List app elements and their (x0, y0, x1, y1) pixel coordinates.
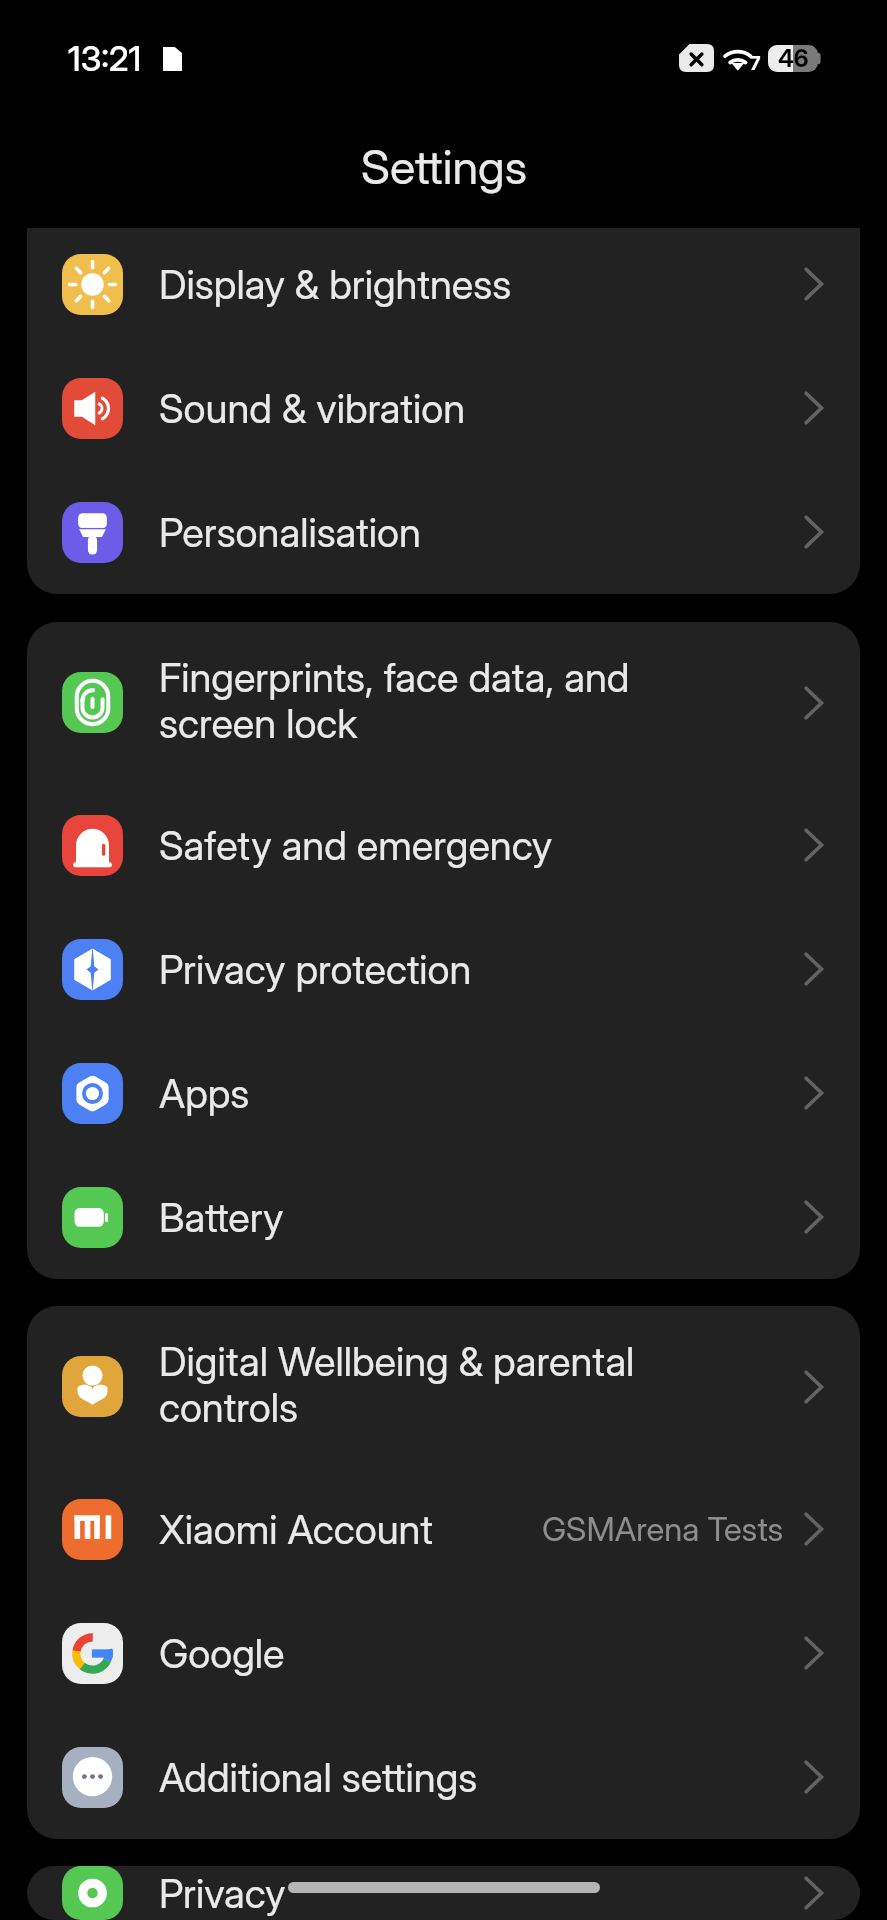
button[interactable]: Fingerprints, face data, and screen lock (27, 622, 860, 783)
staticText: Personalisation (159, 508, 804, 556)
button[interactable]: Sound & vibration (27, 346, 860, 470)
staticText: 46 (778, 44, 809, 71)
button[interactable]: Battery (27, 1155, 860, 1279)
staticText: Safety and emergency (159, 821, 804, 869)
button[interactable]: Display & brightness (27, 228, 860, 346)
staticText: Privacy protection (159, 945, 804, 993)
staticText: Battery (159, 1193, 804, 1241)
other: No SIM card (679, 44, 714, 72)
staticText: Additional settings (159, 1753, 804, 1801)
button[interactable]: Apps (27, 1031, 860, 1155)
button[interactable]: Additional settings (27, 1715, 860, 1839)
button[interactable]: Personalisation (27, 470, 860, 594)
staticText: Xiaomi Account (159, 1505, 542, 1553)
other: Wi-Fi (723, 44, 760, 72)
staticText: 13:21 (68, 38, 142, 79)
staticText: Apps (159, 1069, 804, 1117)
staticText: 7 (750, 52, 761, 75)
staticText: Privacy (159, 1869, 804, 1917)
staticText: GSMArena Tests (542, 1509, 784, 1549)
staticText: Sound & vibration (159, 384, 804, 432)
other: Battery 46 percent (768, 45, 822, 72)
button[interactable]: Privacy (27, 1866, 860, 1920)
staticText: Digital Wellbeing & parental controls (159, 1337, 804, 1431)
staticText: Settings (361, 138, 527, 195)
button[interactable]: Privacy protection (27, 907, 860, 1031)
staticText: Google (159, 1629, 804, 1677)
button[interactable]: Google (27, 1591, 860, 1715)
button[interactable]: Digital Wellbeing & parental controls (27, 1306, 860, 1467)
button[interactable]: Safety and emergency (27, 783, 860, 907)
button[interactable]: Xiaomi Account (27, 1467, 860, 1591)
staticText: Fingerprints, face data, and screen lock (159, 653, 804, 747)
staticText: Display & brightness (159, 260, 804, 308)
